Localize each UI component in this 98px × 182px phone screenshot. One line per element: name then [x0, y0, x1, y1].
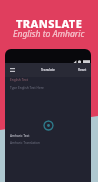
- staticText: Translate: [41, 68, 55, 72]
- button[interactable]: Reset: [78, 68, 87, 72]
- staticText: Type English Text Here: [10, 86, 44, 90]
- staticText: Amharic Text: [10, 134, 30, 138]
- staticText: English to Amharic: [13, 28, 85, 40]
- staticText: English Text: [10, 78, 28, 82]
- staticText: TRANSLATE: [16, 16, 83, 31]
- staticText: Amharic Translation: [10, 141, 40, 145]
- button[interactable]: Menu: [5, 63, 19, 77]
- button[interactable]: Translate: [43, 120, 54, 131]
- staticText: Reset: [78, 68, 87, 72]
